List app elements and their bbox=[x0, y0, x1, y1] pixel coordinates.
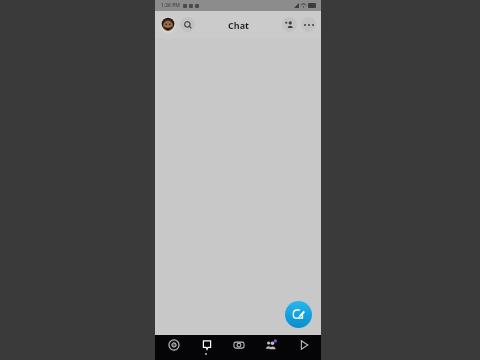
button[interactable]: Map bbox=[159, 338, 187, 351]
button[interactable]: Stories bbox=[256, 338, 284, 351]
staticText: Chat bbox=[228, 19, 249, 31]
button[interactable]: New Chat bbox=[285, 301, 312, 328]
button[interactable]: More options bbox=[301, 17, 316, 32]
button[interactable]: Add friends bbox=[282, 17, 297, 32]
button[interactable]: Profile bbox=[160, 17, 176, 33]
button[interactable]: Search bbox=[180, 17, 195, 32]
button[interactable]: Camera bbox=[224, 338, 252, 351]
staticText: 1:26 PM bbox=[161, 2, 180, 9]
button[interactable]: Chat bbox=[192, 338, 220, 355]
button[interactable]: Spotlight bbox=[289, 338, 317, 351]
